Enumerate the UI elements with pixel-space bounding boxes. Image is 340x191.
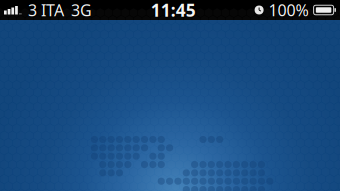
staticText: 3G bbox=[71, 0, 92, 21]
staticText: 3 ITA bbox=[28, 0, 64, 21]
staticText: 100% bbox=[269, 0, 309, 21]
staticText: 11:45 bbox=[151, 0, 196, 21]
